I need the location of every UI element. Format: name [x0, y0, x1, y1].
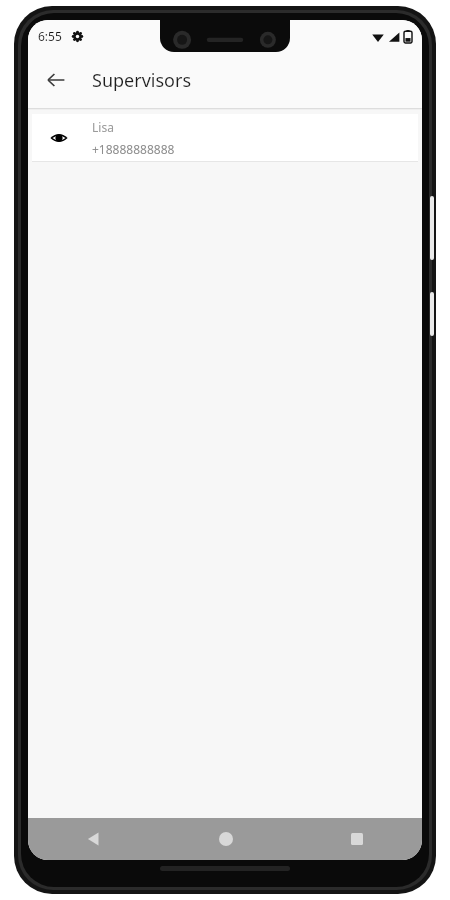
button[interactable]: Back — [36, 60, 76, 100]
staticText: 6:55 — [38, 28, 62, 44]
button[interactable]: Home — [160, 818, 291, 860]
button[interactable]: Back — [28, 818, 160, 860]
staticText: +18888888888 — [92, 141, 175, 157]
button[interactable]: Lisa — [32, 114, 418, 162]
button[interactable]: Recent apps — [291, 818, 422, 860]
staticText: Lisa — [92, 119, 114, 135]
staticText: Supervisors — [92, 68, 192, 93]
